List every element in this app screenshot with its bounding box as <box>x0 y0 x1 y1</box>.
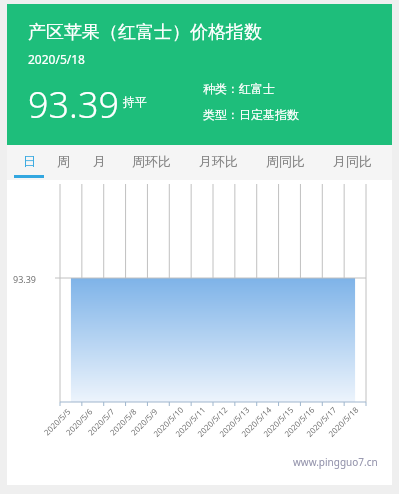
staticText: 2020/5/13 <box>217 404 251 439</box>
staticText: 2020/5/7 <box>85 406 117 437</box>
button[interactable]: 日 <box>12 145 46 180</box>
staticText: 2020/5/9 <box>128 406 160 437</box>
button[interactable]: 周 <box>46 145 81 180</box>
button[interactable]: 月环比 <box>185 145 252 180</box>
staticText: 93.39 <box>13 273 37 285</box>
staticText: 周 <box>57 153 70 169</box>
staticText: 2020/5/15 <box>261 404 295 439</box>
staticText: 2020/5/18 <box>28 51 85 67</box>
staticText: 周同比 <box>266 153 305 169</box>
button[interactable]: 月同比 <box>319 145 386 180</box>
staticText: 2020/5/8 <box>107 406 139 437</box>
staticText: 产区苹果（红富士）价格指数 <box>28 21 262 44</box>
staticText: www.pingguo7.cn <box>293 455 378 469</box>
staticText: 种类：红富士 <box>203 81 275 96</box>
button[interactable]: 周环比 <box>118 145 185 180</box>
staticText: 日 <box>23 153 36 169</box>
staticText: 93.39 <box>28 80 120 129</box>
staticText: 2020/5/18 <box>326 404 360 439</box>
staticText: 持平 <box>123 94 147 109</box>
staticText: 2020/5/17 <box>304 404 338 439</box>
button[interactable]: 月 <box>81 145 118 180</box>
staticText: 2020/5/12 <box>195 404 229 439</box>
staticText: 月同比 <box>333 153 372 169</box>
staticText: 2020/5/14 <box>239 404 273 439</box>
staticText: 2020/5/16 <box>282 404 316 439</box>
staticText: 月环比 <box>199 153 238 169</box>
staticText: 月 <box>93 153 106 169</box>
staticText: 2020/5/11 <box>173 404 207 439</box>
staticText: 类型：日定基指数 <box>203 107 299 122</box>
staticText: 2020/5/10 <box>151 404 185 439</box>
staticText: 2020/5/5 <box>41 406 73 437</box>
staticText: 2020/5/6 <box>63 406 95 437</box>
staticText: 周环比 <box>132 153 171 169</box>
button[interactable]: 周同比 <box>252 145 319 180</box>
